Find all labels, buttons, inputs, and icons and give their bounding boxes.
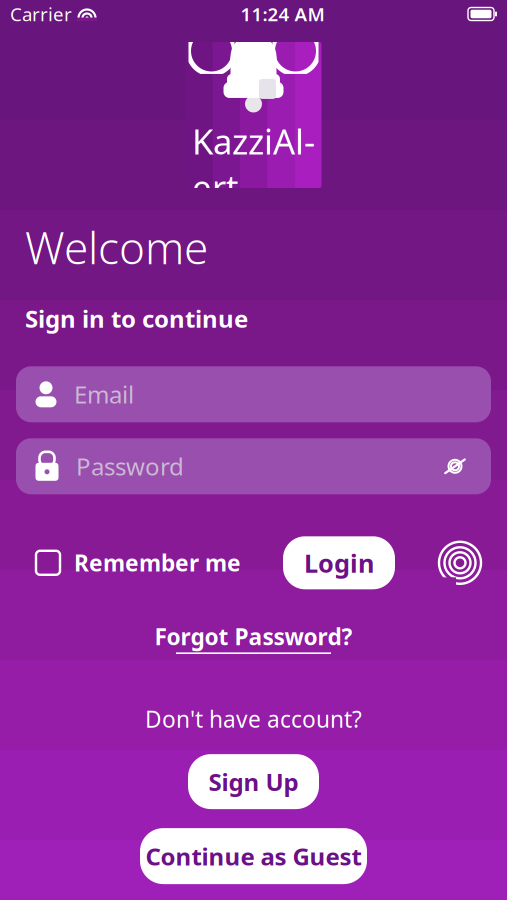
button[interactable]: Continue as Guest [140, 828, 367, 884]
button[interactable]: Remember me [36, 540, 241, 586]
staticText: Continue as Guest [145, 840, 361, 872]
staticText: KazziAlert [192, 118, 315, 210]
button[interactable]: Sign Up [188, 754, 319, 809]
staticText: Sign in to continue [25, 302, 248, 334]
staticText: Don't have account? [145, 704, 362, 734]
staticText: 11:24 AM [240, 2, 324, 26]
staticText: Remember me [74, 548, 241, 578]
button[interactable]: Login [283, 536, 395, 589]
button[interactable]: Forgot Password? [154, 621, 352, 654]
staticText: Password [76, 450, 184, 482]
staticText: Sign Up [208, 766, 298, 798]
button[interactable]: Login with fingerprint [437, 540, 483, 586]
staticText: Email [74, 378, 134, 410]
staticText: Login [304, 546, 374, 580]
staticText: Carrier [10, 2, 72, 26]
staticText: Welcome [25, 218, 208, 276]
button[interactable]: Show password [437, 451, 473, 481]
staticText: Forgot Password? [154, 621, 352, 651]
